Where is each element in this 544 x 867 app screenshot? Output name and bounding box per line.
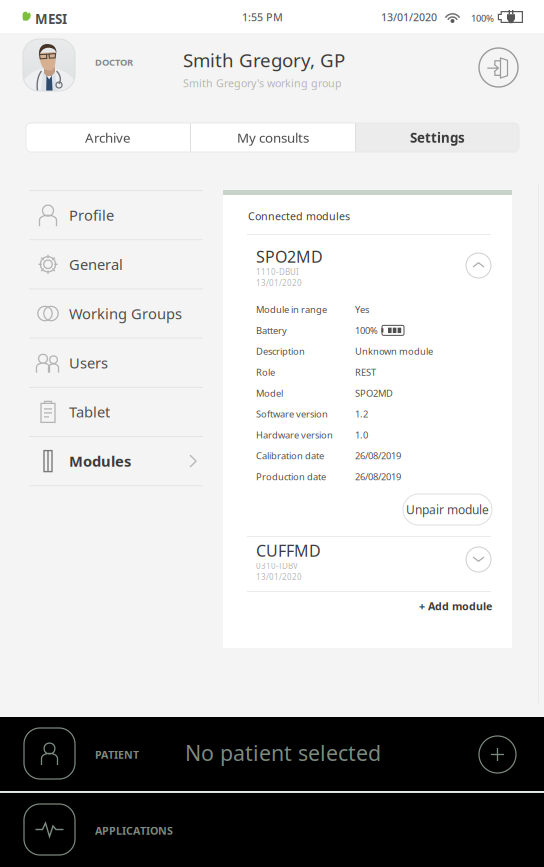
- button[interactable]: Settings: [356, 123, 519, 152]
- staticText: 100%: [471, 12, 494, 24]
- staticText: 1.2: [355, 408, 368, 420]
- staticText: Modules: [69, 451, 131, 471]
- staticText: MESI: [35, 10, 67, 28]
- staticText: Working Groups: [69, 304, 182, 323]
- staticText: SPO2MD: [256, 246, 323, 267]
- staticText: General: [69, 255, 123, 274]
- button[interactable]: Collapse SPO2MD: [465, 252, 492, 279]
- staticText: 100%: [355, 324, 378, 337]
- staticText: Settings: [410, 129, 465, 146]
- button[interactable]: PATIENT: [0, 717, 544, 791]
- staticText: Archive: [85, 129, 131, 146]
- staticText: Users: [69, 353, 108, 372]
- staticText: 0310-TDBV: [256, 561, 298, 571]
- button[interactable]: Tablet: [29, 388, 203, 436]
- staticText: Role: [256, 366, 275, 378]
- button[interactable]: Working Groups: [29, 289, 203, 338]
- staticText: Battery: [256, 324, 287, 337]
- button[interactable]: My consults: [191, 123, 355, 152]
- button[interactable]: APPLICATIONS: [0, 793, 544, 867]
- staticText: 1110-DBUI: [256, 267, 299, 277]
- button[interactable]: + Add module: [418, 597, 492, 615]
- staticText: Tablet: [69, 402, 110, 422]
- staticText: 13/01/2020: [256, 278, 302, 288]
- staticText: Unknown module: [355, 345, 433, 357]
- staticText: 13/01/2020: [381, 10, 437, 24]
- staticText: DOCTOR: [95, 56, 133, 68]
- staticText: 1.0: [355, 429, 368, 441]
- staticText: My consults: [237, 129, 309, 146]
- staticText: SPO2MD: [355, 387, 393, 399]
- button[interactable]: Modules: [29, 437, 203, 485]
- staticText: + Add module: [419, 599, 492, 613]
- staticText: Profile: [69, 205, 114, 225]
- staticText: Unpair module: [406, 501, 489, 517]
- staticText: Description: [256, 345, 305, 357]
- staticText: Software version: [256, 408, 328, 420]
- staticText: Smith Gregory's working group: [183, 76, 342, 90]
- staticText: REST: [355, 366, 376, 378]
- button[interactable]: Users: [29, 339, 203, 387]
- staticText: 26/08/2019: [355, 450, 401, 462]
- staticText: 1:55 PM: [242, 10, 283, 24]
- button[interactable]: Unpair module: [403, 494, 492, 525]
- staticText: 26/08/2019: [355, 470, 401, 483]
- staticText: Module in range: [256, 303, 327, 316]
- staticText: CUFFMD: [256, 540, 321, 561]
- staticText: Connected modules: [248, 209, 350, 223]
- button[interactable]: Expand CUFFMD: [465, 546, 492, 573]
- staticText: Calibration date: [256, 450, 324, 462]
- staticText: APPLICATIONS: [95, 823, 173, 838]
- staticText: No patient selected: [185, 738, 381, 767]
- staticText: PATIENT: [95, 747, 139, 762]
- staticText: Production date: [256, 470, 326, 483]
- button[interactable]: Archive: [26, 123, 190, 152]
- staticText: Smith Gregory, GP: [183, 47, 345, 72]
- button[interactable]: Profile: [29, 191, 203, 239]
- staticText: Yes: [355, 303, 369, 316]
- staticText: Hardware version: [256, 429, 333, 441]
- staticText: 13/01/2020: [256, 572, 302, 582]
- button[interactable]: Log out: [477, 46, 520, 89]
- button[interactable]: General: [29, 240, 203, 288]
- staticText: Model: [256, 387, 283, 399]
